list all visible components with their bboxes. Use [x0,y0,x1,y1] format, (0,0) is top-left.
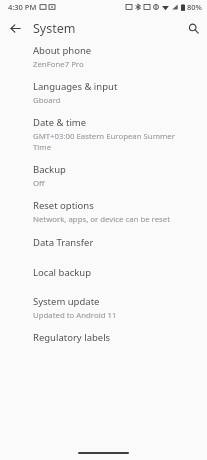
staticText: ZenFone7 Pro [33,59,84,70]
button[interactable]: Languages & input [0,80,207,116]
button[interactable]: Local backup [0,266,207,295]
staticText: Regulatory labels [33,331,111,344]
staticText: 80% [187,2,202,12]
button[interactable]: Reset options [0,199,207,236]
staticText: Date & time [33,116,87,129]
button[interactable]: Back [4,17,26,39]
button[interactable]: Search [182,17,204,39]
button[interactable]: Date & time [0,116,207,163]
staticText: About phone [33,44,92,57]
button[interactable]: Regulatory labels [0,331,207,354]
staticText: Data Transfer [33,236,94,249]
staticText: Off [33,178,45,189]
button[interactable]: Backup [0,163,207,199]
staticText: Languages & input [33,80,118,93]
staticText: Reset options [33,199,94,212]
staticText: Network, apps, or device can be reset [33,214,171,225]
staticText: GMT+03:00 Eastern European Summer Time [33,131,193,153]
button[interactable]: Data Transfer [0,236,207,266]
staticText: 4:30 PM [8,2,37,12]
staticText: Updated to Android 11 [33,310,117,321]
button[interactable]: About phone [0,44,207,80]
button[interactable]: System update [0,295,207,331]
staticText: Backup [33,163,66,176]
staticText: System update [33,295,100,308]
staticText: System [33,20,76,37]
staticText: Local backup [33,266,92,279]
staticText: Gboard [33,95,61,106]
